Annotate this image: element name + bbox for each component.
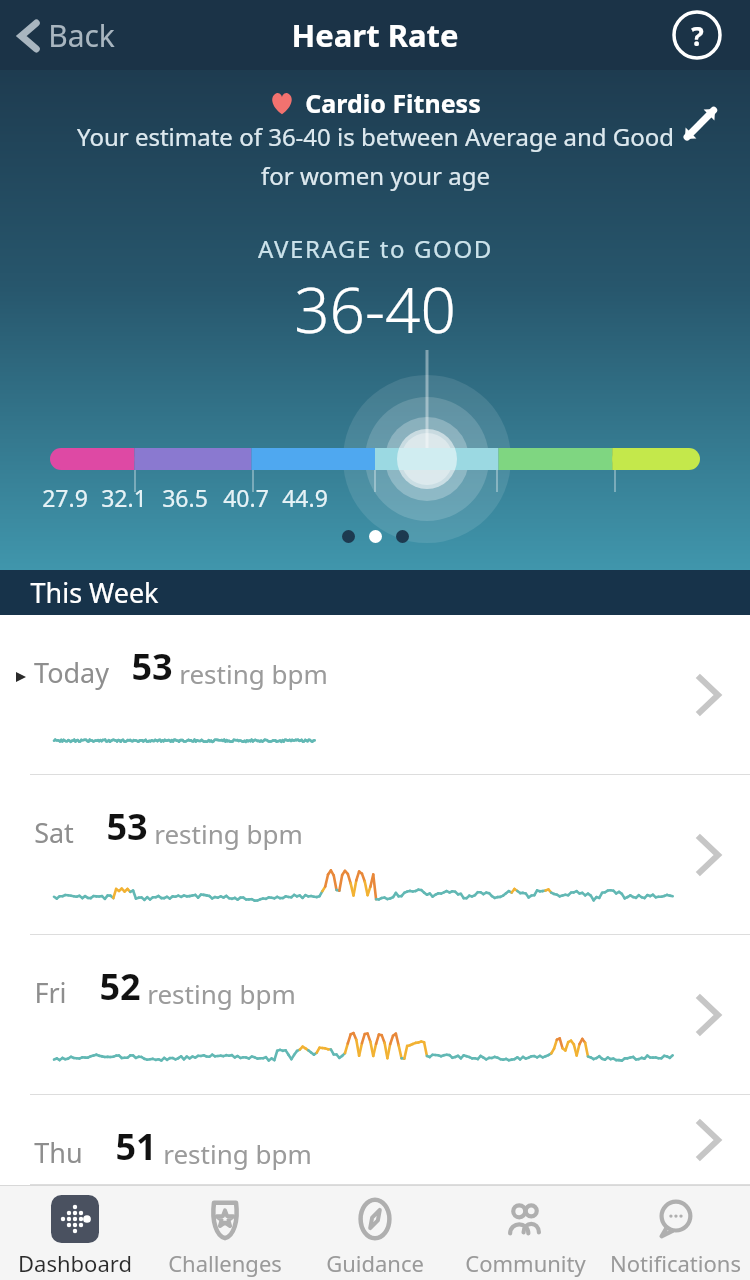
button[interactable]: Thu [0, 1095, 750, 1185]
staticText: 40.7 [223, 482, 269, 513]
button[interactable]: Challenges [150, 1185, 300, 1280]
staticText: 44.9 [282, 482, 328, 513]
button[interactable]: Notifications [600, 1185, 750, 1280]
staticText: resting bpm [154, 816, 303, 851]
staticText: 36.5 [162, 482, 208, 513]
staticText: Community [465, 1248, 586, 1278]
staticText: resting bpm [147, 976, 296, 1011]
staticText: Dashboard [18, 1248, 132, 1278]
staticText: resting bpm [163, 1136, 312, 1171]
button[interactable]: Guidance [300, 1185, 450, 1280]
staticText: Today [34, 654, 109, 691]
staticText: Fri [34, 974, 67, 1011]
staticText: 53 [131, 642, 173, 691]
staticText: 36-40 [294, 267, 456, 351]
staticText: Notifications [610, 1248, 741, 1278]
staticText: Heart Rate [291, 14, 459, 56]
staticText: 52 [99, 962, 141, 1011]
button[interactable]: Today [0, 615, 750, 775]
staticText: Guidance [326, 1248, 424, 1278]
staticText: 51 [115, 1122, 157, 1171]
staticText: Back [48, 15, 115, 56]
staticText: for women your age [261, 159, 490, 192]
button[interactable]: Fri [0, 935, 750, 1095]
button[interactable]: Dashboard [0, 1185, 150, 1280]
staticText: Sat [34, 814, 74, 851]
button[interactable]: Help [672, 10, 722, 60]
staticText: Cardio Fitness [305, 86, 481, 120]
staticText: 27.9 [42, 482, 88, 513]
button[interactable]: Back [10, 9, 121, 62]
button[interactable]: Sat [0, 775, 750, 935]
staticText: 53 [106, 802, 148, 851]
staticText: ? [691, 18, 704, 53]
staticText: 32.1 [101, 482, 147, 513]
staticText: This Week [30, 574, 159, 611]
staticText: Thu [34, 1134, 83, 1171]
button[interactable]: Community [450, 1185, 600, 1280]
staticText: Challenges [168, 1248, 282, 1278]
staticText: resting bpm [179, 656, 328, 691]
button[interactable]: Expand [674, 98, 726, 150]
staticText: AVERAGE to GOOD [258, 232, 493, 265]
staticText: Your estimate of 36-40 is between Averag… [77, 120, 674, 153]
